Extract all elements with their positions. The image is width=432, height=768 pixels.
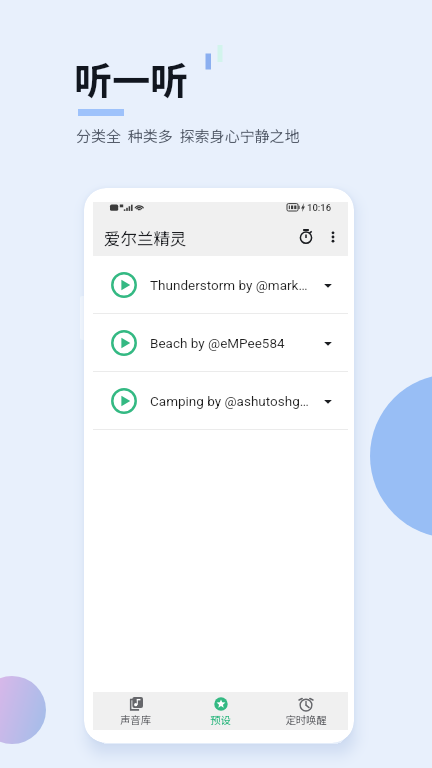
- staticText: 分类全 种类多 探索身心宁静之地: [76, 125, 300, 147]
- button[interactable]: Thunderstorm by @mark…: [93, 256, 348, 314]
- staticText: 声音库: [120, 712, 151, 727]
- button[interactable]: 预设: [178, 695, 263, 727]
- staticText: Camping by @ashutoshg…: [150, 393, 316, 409]
- staticText: 10:16: [307, 202, 332, 213]
- staticText: 预设: [210, 712, 231, 727]
- staticText: 爱尔兰精灵: [104, 226, 187, 250]
- staticText: 听一听: [74, 51, 189, 106]
- staticText: 定时唤醒: [285, 712, 327, 727]
- staticText: Thunderstorm by @mark…: [150, 277, 316, 293]
- button[interactable]: Beach by @eMPee584: [93, 314, 348, 372]
- staticText: Beach by @eMPee584: [150, 335, 316, 351]
- button[interactable]: Camping by @ashutoshg…: [93, 372, 348, 430]
- button[interactable]: Timer: [294, 224, 318, 248]
- button[interactable]: 声音库: [93, 695, 178, 727]
- button[interactable]: 定时唤醒: [263, 695, 348, 727]
- button[interactable]: More options: [322, 226, 344, 248]
